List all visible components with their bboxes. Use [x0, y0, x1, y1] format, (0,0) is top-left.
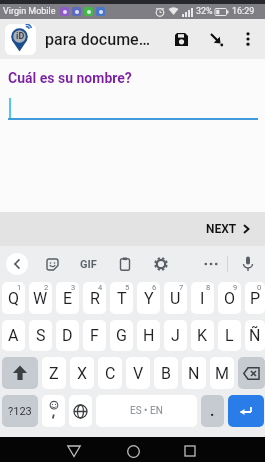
staticText: I [200, 289, 205, 308]
button[interactable] [113, 252, 137, 276]
button[interactable]: E [56, 282, 79, 314]
button[interactable] [69, 395, 92, 427]
staticText: A [8, 326, 19, 345]
staticText: Virgin Mobile [3, 6, 56, 17]
staticText: Q [8, 289, 20, 308]
staticText: P [250, 289, 261, 308]
staticText: T [117, 289, 127, 308]
button[interactable]: O [218, 282, 241, 314]
button[interactable]: X [70, 357, 94, 389]
staticText: E [63, 289, 73, 308]
staticText: F [90, 326, 99, 345]
button[interactable]: N [182, 357, 206, 389]
staticText: Ñ [249, 326, 261, 345]
button[interactable]: NEXT [206, 222, 251, 236]
button[interactable]: H [137, 320, 160, 351]
staticText: H [143, 326, 155, 345]
button[interactable]: Ñ [245, 320, 265, 351]
button[interactable] [163, 21, 199, 57]
button[interactable] [236, 252, 260, 276]
staticText: 9 [233, 283, 238, 292]
button[interactable]: GIF [76, 258, 100, 271]
staticText: 3 [71, 283, 76, 292]
staticText: para docume… [45, 30, 150, 49]
button[interactable]: ?123 [2, 395, 38, 427]
staticText: 7 [179, 283, 184, 292]
staticText: U [170, 289, 181, 308]
staticText: K [197, 326, 208, 345]
button[interactable] [121, 440, 145, 462]
staticText: M [215, 364, 229, 383]
button[interactable] [199, 22, 233, 56]
button[interactable] [233, 24, 263, 54]
button[interactable] [238, 357, 265, 389]
staticText: 4 [98, 283, 103, 292]
staticText: 1 [17, 283, 22, 292]
staticText: . [210, 402, 215, 420]
button[interactable]: . [201, 395, 224, 427]
staticText: N [188, 364, 200, 383]
staticText: V [133, 364, 144, 383]
staticText: Y [144, 289, 154, 308]
button[interactable]: Z [42, 357, 66, 389]
staticText: 32% [196, 6, 213, 17]
button[interactable]: Y [137, 282, 160, 314]
staticText: ES • EN [130, 405, 163, 417]
button[interactable]: K [191, 320, 214, 351]
button[interactable] [42, 395, 65, 427]
button[interactable] [149, 252, 173, 276]
button[interactable] [199, 252, 223, 276]
staticText: 5 [125, 283, 130, 292]
button[interactable]: T [110, 282, 133, 314]
button[interactable]: P [245, 282, 265, 314]
staticText: X [77, 364, 88, 383]
staticText: G [116, 326, 127, 345]
staticText: R [90, 289, 100, 308]
button[interactable]: I [191, 282, 214, 314]
button[interactable]: A [2, 320, 25, 351]
button[interactable]: M [210, 357, 234, 389]
button[interactable]: B [154, 357, 178, 389]
button[interactable]: F [83, 320, 106, 351]
staticText: B [161, 364, 171, 383]
staticText: W [33, 289, 48, 308]
button[interactable]: U [164, 282, 187, 314]
button[interactable] [40, 252, 64, 276]
button[interactable]: R [83, 282, 106, 314]
button[interactable]: W [29, 282, 52, 314]
staticText: 0 [257, 283, 262, 292]
staticText: Z [49, 364, 59, 383]
staticText: Cuál es su nombre? [8, 70, 132, 86]
staticText: 8 [206, 283, 211, 292]
staticText: 6 [152, 283, 157, 292]
button[interactable]: C [98, 357, 122, 389]
button[interactable]: J [164, 320, 187, 351]
staticText: S [36, 326, 46, 345]
staticText: J [171, 326, 180, 345]
staticText: 2 [44, 283, 49, 292]
button[interactable]: ES • EN [96, 395, 197, 427]
button[interactable] [6, 253, 28, 275]
button[interactable]: iD [5, 24, 36, 55]
button[interactable]: V [126, 357, 150, 389]
staticText: C [105, 364, 116, 383]
staticText: D [62, 326, 73, 345]
staticText: ?123 [8, 405, 32, 418]
staticText: GIF [80, 258, 97, 271]
staticText: iD [16, 31, 25, 42]
button[interactable] [2, 357, 38, 389]
button[interactable]: L [218, 320, 241, 351]
button[interactable]: G [110, 320, 133, 351]
button[interactable] [62, 440, 86, 462]
button[interactable] [228, 395, 264, 427]
button[interactable]: D [56, 320, 79, 351]
button[interactable]: S [29, 320, 52, 351]
staticText: O [224, 289, 236, 308]
button[interactable]: Q [2, 282, 25, 314]
staticText: L [225, 326, 234, 345]
staticText: NEXT [206, 222, 237, 236]
staticText: 16:29 [232, 6, 255, 17]
button[interactable] [178, 440, 202, 462]
